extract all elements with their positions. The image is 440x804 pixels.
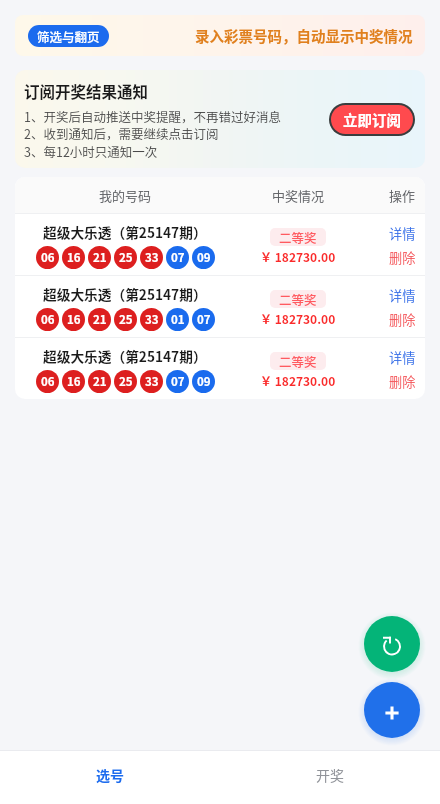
staticText: 选号 xyxy=(96,765,124,785)
button[interactable]: 详情 xyxy=(381,346,424,369)
staticText: 超级大乐透（第25147期） xyxy=(43,222,207,242)
button[interactable]: Add xyxy=(364,682,420,738)
staticText: 16 xyxy=(67,311,81,328)
staticText: 超级大乐透（第25147期） xyxy=(43,284,207,304)
staticText: 16 xyxy=(67,373,81,390)
staticText: 06 xyxy=(41,373,55,390)
button[interactable]: 删除 xyxy=(381,370,424,393)
staticText: 21 xyxy=(93,311,107,328)
button[interactable]: 删除 xyxy=(381,308,424,331)
staticText: 详情 xyxy=(389,286,416,305)
button[interactable]: 立即订阅 xyxy=(331,105,413,134)
button[interactable]: 筛选与翻页 xyxy=(28,25,109,47)
staticText: 详情 xyxy=(389,348,416,367)
staticText: 1、开奖后自动推送中奖提醒，不再错过好消息 2、收到通知后，需要继续点击订阅 3… xyxy=(24,107,281,161)
button[interactable]: 删除 xyxy=(381,246,424,269)
staticText: 删除 xyxy=(389,372,416,391)
staticText: 二等奖 xyxy=(279,290,317,308)
button[interactable]: 选号 xyxy=(0,751,220,804)
staticText: 二等奖 xyxy=(279,352,317,370)
staticText: 操作 xyxy=(389,186,416,205)
staticText: 删除 xyxy=(389,248,416,267)
staticText: 中奖情况 xyxy=(272,186,325,205)
staticText: 33 xyxy=(145,311,159,328)
staticText: 06 xyxy=(41,311,55,328)
staticText: 07 xyxy=(197,311,211,328)
staticText: 我的号码 xyxy=(99,186,152,205)
staticText: 09 xyxy=(197,373,211,390)
button[interactable]: 详情 xyxy=(381,284,424,307)
staticText: 开奖 xyxy=(316,765,344,785)
staticText: 立即订阅 xyxy=(343,109,401,130)
staticText: 二等奖 xyxy=(279,228,317,246)
staticText: 09 xyxy=(197,249,211,266)
staticText: 删除 xyxy=(389,310,416,329)
button[interactable]: 详情 xyxy=(381,222,424,245)
staticText: 33 xyxy=(145,249,159,266)
staticText: 07 xyxy=(171,249,185,266)
staticText: 21 xyxy=(93,249,107,266)
staticText: 07 xyxy=(171,373,185,390)
staticText: 超级大乐透（第25147期） xyxy=(43,346,207,366)
staticText: 筛选与翻页 xyxy=(37,27,100,45)
staticText: ￥ 182730.00 xyxy=(260,248,336,265)
staticText: 详情 xyxy=(389,224,416,243)
staticText: 订阅开奖结果通知 xyxy=(24,80,149,102)
button[interactable]: Refresh xyxy=(364,616,420,672)
staticText: 25 xyxy=(119,373,133,390)
staticText: 25 xyxy=(119,249,133,266)
staticText: 25 xyxy=(119,311,133,328)
staticText: 06 xyxy=(41,249,55,266)
button[interactable]: 开奖 xyxy=(220,751,440,804)
staticText: 21 xyxy=(93,373,107,390)
staticText: ￥ 182730.00 xyxy=(260,372,336,389)
staticText: 录入彩票号码，自动显示中奖情况 xyxy=(195,25,413,46)
staticText: 33 xyxy=(145,373,159,390)
staticText: 01 xyxy=(171,311,185,328)
staticText: 16 xyxy=(67,249,81,266)
staticText: ￥ 182730.00 xyxy=(260,310,336,327)
